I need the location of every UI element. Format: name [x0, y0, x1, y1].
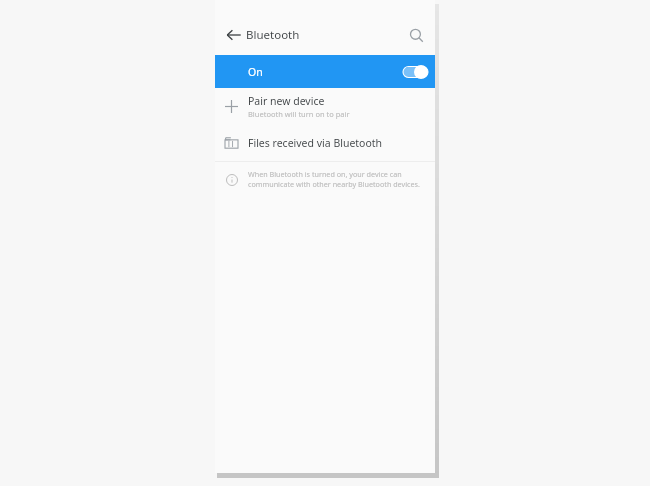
button[interactable]: On [215, 55, 435, 88]
staticText: Pair new device [248, 94, 325, 108]
staticText: Files received via Bluetooth [248, 136, 383, 150]
button[interactable]: Files received via Bluetooth [215, 125, 435, 161]
button[interactable]: Back [221, 22, 247, 48]
staticText: When Bluetooth is turned on, your device… [248, 169, 420, 189]
staticText: On [248, 65, 263, 79]
staticText: Bluetooth [246, 27, 300, 43]
button[interactable]: Search [403, 22, 429, 48]
button[interactable]: Pair new device [215, 88, 435, 125]
staticText: Bluetooth will turn on to pair [248, 109, 350, 119]
